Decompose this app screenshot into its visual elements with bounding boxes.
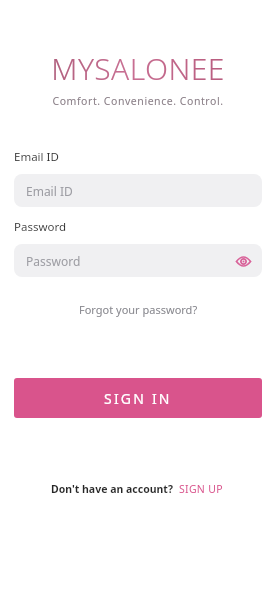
staticText: SIGN UP: [179, 482, 223, 496]
staticText: Password: [14, 219, 67, 235]
staticText: Comfort. Convenience. Control.: [52, 94, 224, 108]
button[interactable]: Password: [14, 244, 262, 277]
button[interactable]: Show password: [232, 250, 254, 272]
staticText: Email ID: [26, 183, 73, 199]
staticText: Password: [26, 253, 81, 269]
button[interactable]: SIGN IN: [14, 378, 262, 418]
staticText: Forgot your password?: [79, 302, 198, 317]
button[interactable]: Email ID: [14, 174, 262, 207]
staticText: Don't have an account?: [51, 482, 173, 496]
button[interactable]: Forgot your password?: [73, 299, 204, 320]
staticText: MYSALONEE: [51, 48, 225, 89]
staticText: SIGN IN: [104, 389, 172, 408]
staticText: Email ID: [14, 149, 59, 165]
button[interactable]: SIGN UP: [177, 480, 225, 498]
